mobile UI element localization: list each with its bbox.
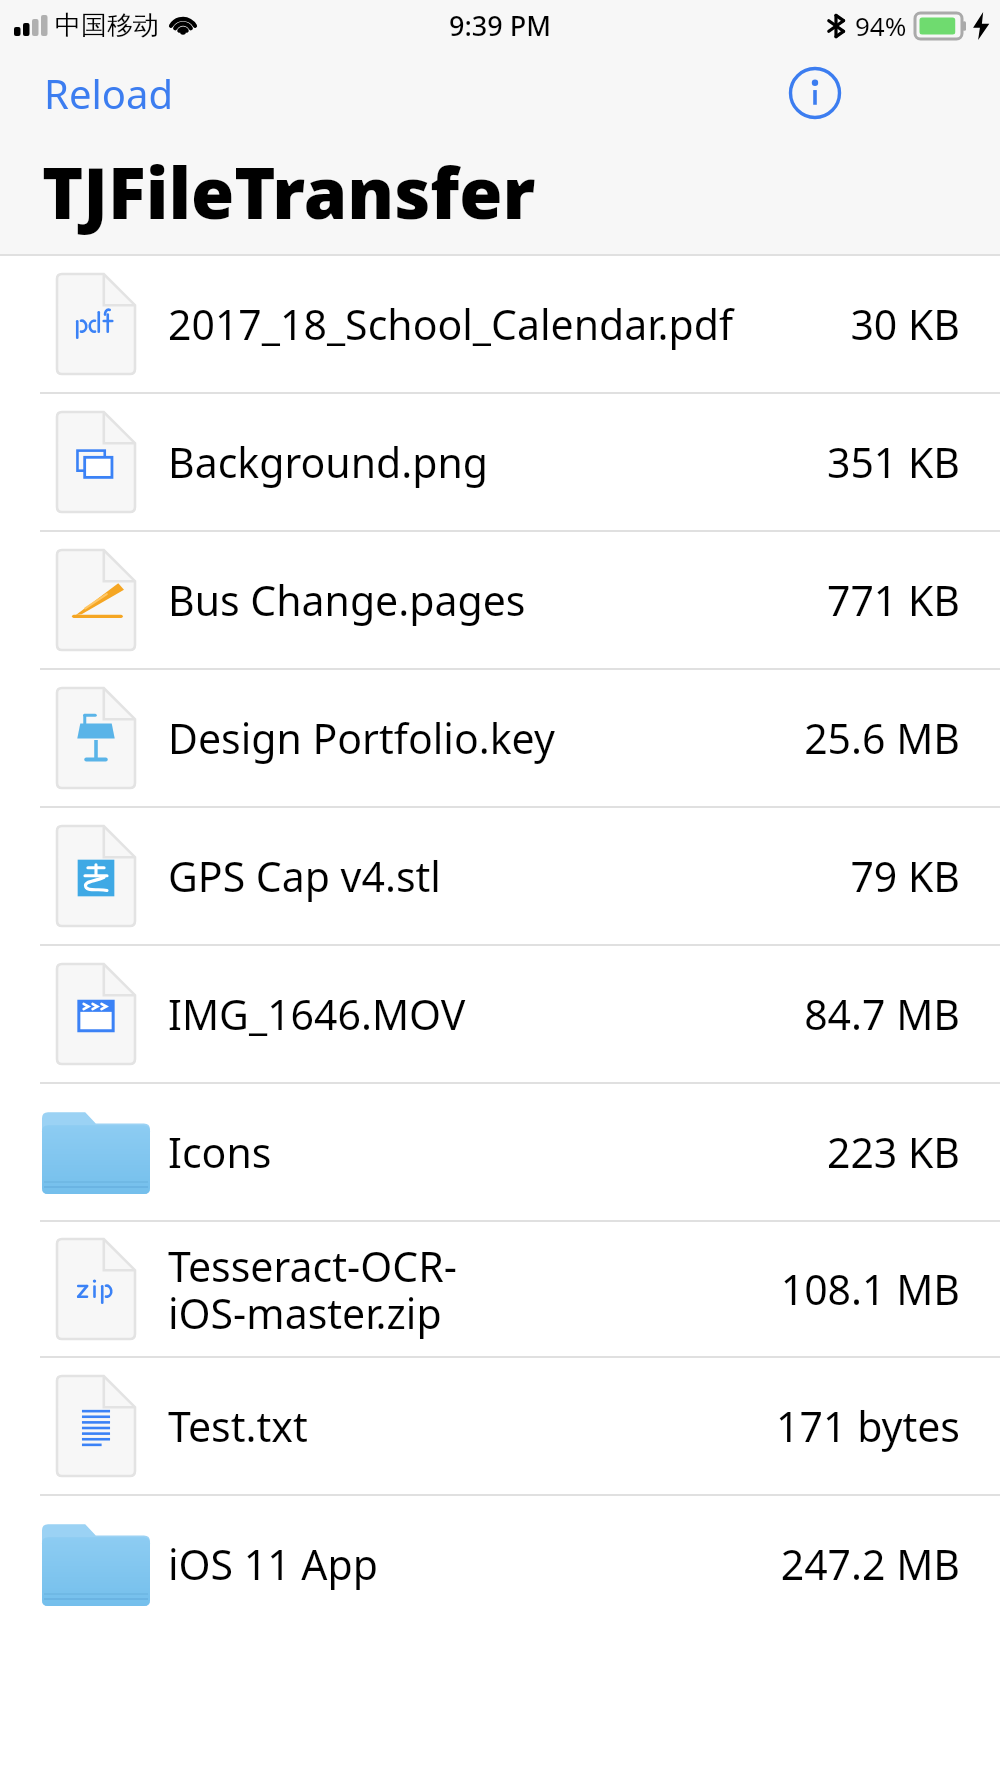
staticText: 9:39 PM: [449, 7, 551, 44]
button[interactable]: IMG_1646.MOV: [0, 946, 1000, 1082]
staticText: 30 KB: [850, 296, 960, 352]
staticText: 79 KB: [850, 848, 960, 904]
staticText: Tesseract-OCR- iOS-master.zip: [168, 1238, 780, 1341]
staticText: 25.6 MB: [804, 710, 960, 766]
button[interactable]: iOS 11 App: [0, 1496, 1000, 1632]
button[interactable]: 2017_18_School_Calendar.pdf: [0, 256, 1000, 392]
staticText: Design Portfolio.key: [168, 710, 804, 766]
staticText: TJFileTransfer: [42, 144, 536, 239]
staticText: GPS Cap v4.stl: [168, 848, 850, 904]
staticText: 247.2 MB: [780, 1536, 960, 1592]
staticText: Reload: [44, 66, 173, 120]
staticText: 351 KB: [826, 434, 960, 490]
button[interactable]: GPS Cap v4.stl: [0, 808, 1000, 944]
staticText: 84.7 MB: [804, 986, 960, 1042]
staticText: 108.1 MB: [780, 1261, 960, 1317]
staticText: IMG_1646.MOV: [168, 986, 804, 1042]
button[interactable]: Background.png: [0, 394, 1000, 530]
staticText: 223 KB: [826, 1124, 960, 1180]
button[interactable]: Bus Change.pages: [0, 532, 1000, 668]
staticText: Icons: [168, 1124, 826, 1180]
button[interactable]: Info: [784, 62, 846, 124]
staticText: 94%: [855, 8, 907, 43]
button[interactable]: Design Portfolio.key: [0, 670, 1000, 806]
button[interactable]: Test.txt: [0, 1358, 1000, 1494]
button[interactable]: Reload: [30, 58, 187, 128]
staticText: 中国移动: [55, 9, 159, 42]
staticText: 171 bytes: [776, 1398, 960, 1454]
staticText: Test.txt: [168, 1398, 776, 1454]
staticText: 771 KB: [826, 572, 960, 628]
button[interactable]: Icons: [0, 1084, 1000, 1220]
staticText: iOS 11 App: [168, 1536, 780, 1592]
button[interactable]: Tesseract-OCR- iOS-master.zip: [0, 1222, 1000, 1356]
staticText: Background.png: [168, 434, 826, 490]
staticText: 2017_18_School_Calendar.pdf: [168, 296, 850, 352]
staticText: Bus Change.pages: [168, 572, 826, 628]
